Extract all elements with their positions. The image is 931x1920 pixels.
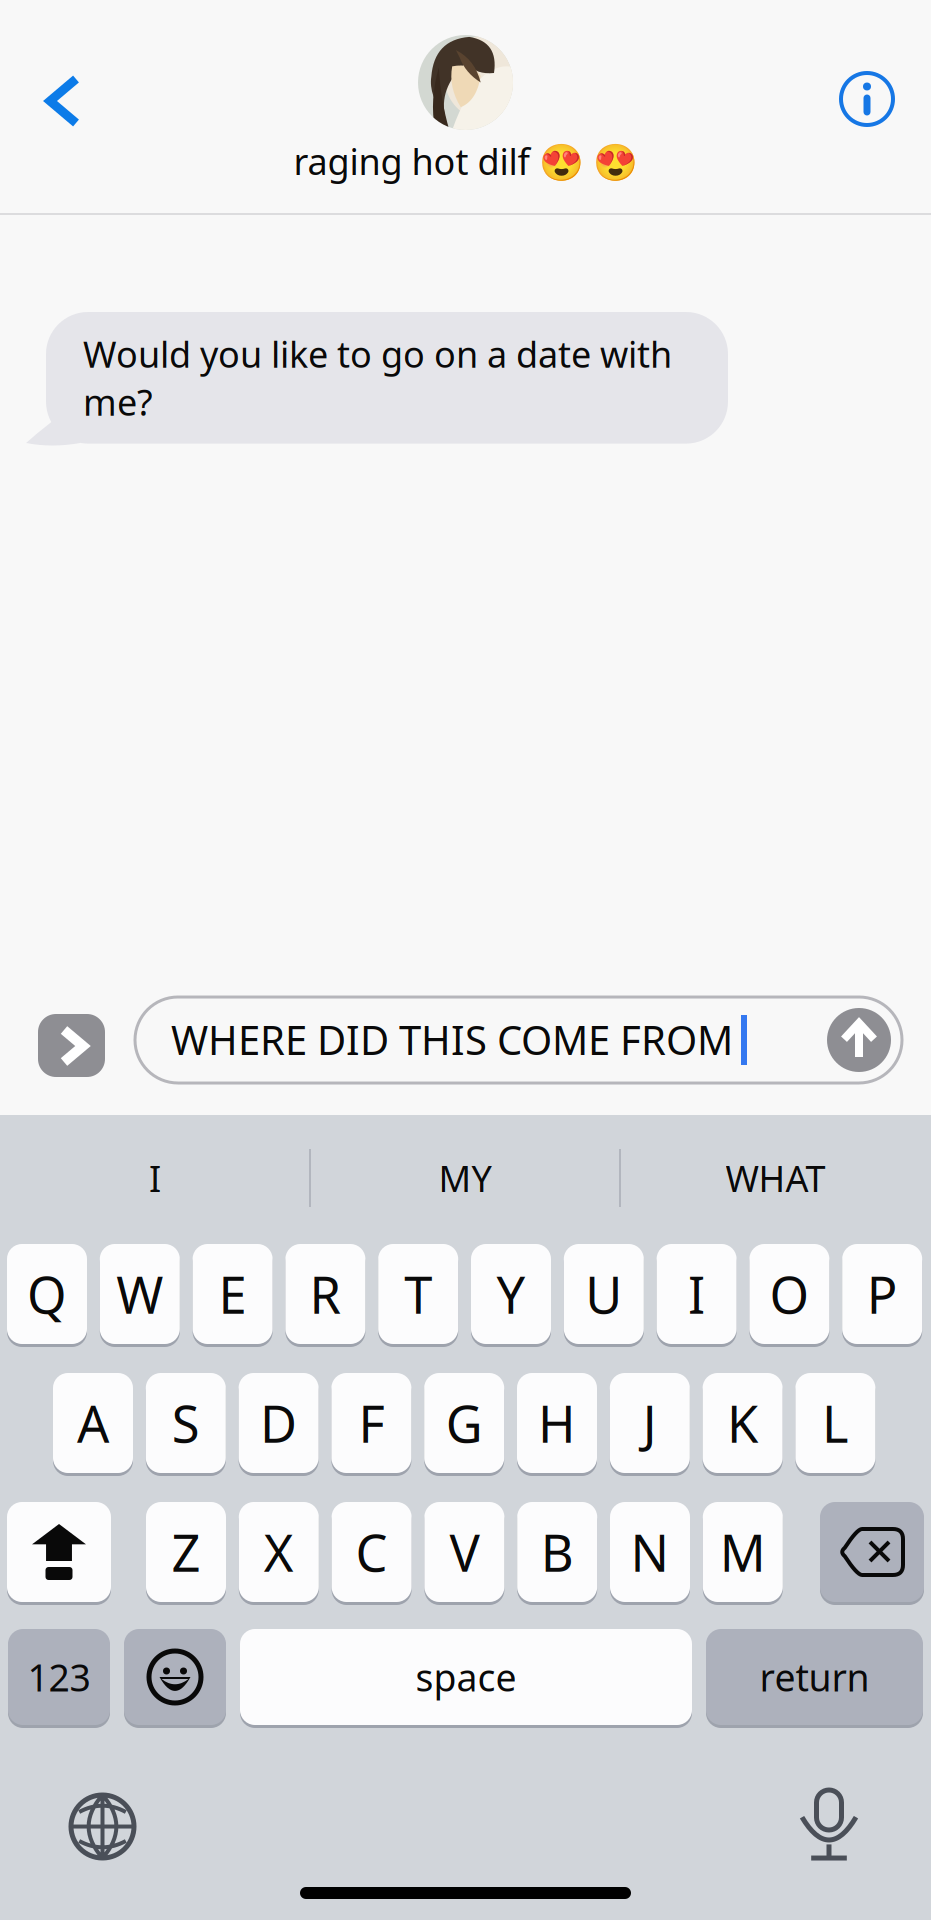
staticText: O <box>769 1260 809 1328</box>
button[interactable]: B <box>517 1502 597 1602</box>
button[interactable]: X <box>239 1502 319 1602</box>
button[interactable]: Shift <box>7 1502 111 1602</box>
staticText: D <box>260 1389 297 1457</box>
staticText: A <box>77 1389 109 1457</box>
button[interactable]: L <box>795 1373 875 1473</box>
button[interactable]: J <box>610 1373 690 1473</box>
staticText: M <box>720 1518 766 1586</box>
staticText: W <box>116 1260 163 1328</box>
button[interactable]: MY <box>310 1123 620 1233</box>
button[interactable]: Emoji <box>124 1629 226 1725</box>
staticText: K <box>727 1389 758 1457</box>
button[interactable]: space <box>240 1629 692 1725</box>
button[interactable]: A <box>53 1373 133 1473</box>
button[interactable]: K <box>703 1373 783 1473</box>
staticText: E <box>219 1260 247 1328</box>
button[interactable]: Q <box>7 1244 87 1344</box>
button[interactable]: O <box>749 1244 829 1344</box>
button[interactable]: return <box>706 1629 923 1725</box>
staticText: I <box>149 1154 161 1202</box>
button[interactable]: W <box>100 1244 180 1344</box>
button[interactable]: Z <box>146 1502 226 1602</box>
staticText: F <box>358 1389 384 1457</box>
button[interactable]: C <box>332 1502 412 1602</box>
button[interactable]: I <box>657 1244 737 1344</box>
staticText: space <box>415 1652 516 1702</box>
staticText: Q <box>27 1260 67 1328</box>
staticText: I <box>688 1260 705 1328</box>
staticText: B <box>541 1518 574 1586</box>
button[interactable]: I <box>0 1123 310 1233</box>
staticText: return <box>759 1652 869 1702</box>
button[interactable]: P <box>842 1244 922 1344</box>
staticText: Z <box>171 1518 200 1586</box>
staticText: WHAT <box>725 1154 825 1202</box>
button[interactable]: F <box>331 1373 411 1473</box>
button[interactable]: N <box>610 1502 690 1602</box>
button[interactable]: D <box>239 1373 319 1473</box>
button[interactable]: R <box>285 1244 365 1344</box>
button[interactable]: Y <box>471 1244 551 1344</box>
staticText: L <box>822 1389 849 1457</box>
staticText: Would you like to go on a date with me? <box>83 330 672 426</box>
button[interactable]: Dictate <box>774 1760 884 1870</box>
staticText: T <box>404 1260 432 1328</box>
staticText: Y <box>496 1260 525 1328</box>
staticText: R <box>309 1260 341 1328</box>
staticText: V <box>449 1518 479 1586</box>
staticText: U <box>585 1260 622 1328</box>
button[interactable]: T <box>378 1244 458 1344</box>
button[interactable]: WHAT <box>620 1123 931 1233</box>
staticText: 123 <box>27 1652 90 1702</box>
button[interactable]: M <box>703 1502 783 1602</box>
button[interactable]: Details <box>819 51 915 147</box>
button[interactable]: E <box>193 1244 273 1344</box>
button[interactable]: V <box>424 1502 504 1602</box>
staticText: J <box>643 1389 657 1457</box>
button[interactable]: 123 <box>8 1629 110 1725</box>
staticText: raging hot dilf 😍 😍 <box>293 137 637 185</box>
staticText: X <box>264 1518 294 1586</box>
button[interactable]: Apps <box>38 1014 105 1077</box>
staticText: S <box>172 1389 200 1457</box>
staticText: C <box>356 1518 388 1586</box>
staticText: H <box>538 1389 576 1457</box>
staticText: WHERE DID THIS COME FROM <box>171 1013 733 1066</box>
staticText: P <box>867 1260 898 1328</box>
staticText: N <box>630 1518 669 1586</box>
button[interactable]: G <box>424 1373 504 1473</box>
button[interactable]: Back <box>22 43 118 155</box>
button[interactable]: Next keyboard <box>47 1760 157 1870</box>
button[interactable]: S <box>146 1373 226 1473</box>
button[interactable]: Delete <box>820 1502 924 1602</box>
button[interactable]: Send <box>827 1008 891 1072</box>
button[interactable]: H <box>517 1373 597 1473</box>
staticText: G <box>446 1389 483 1457</box>
button[interactable]: U <box>564 1244 644 1344</box>
staticText: MY <box>438 1154 491 1202</box>
